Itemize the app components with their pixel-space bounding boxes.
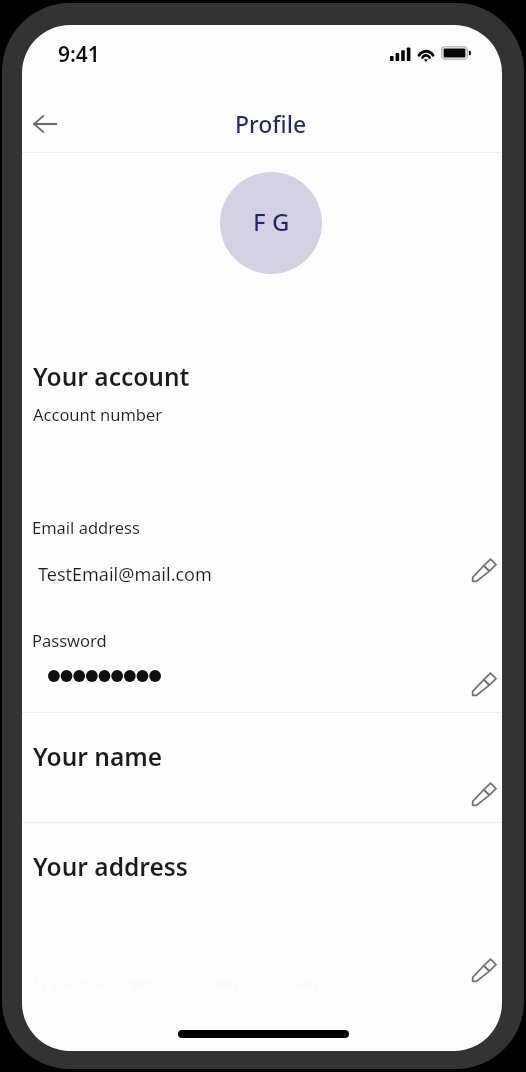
staticText: TestEmail@mail.com <box>38 562 212 587</box>
button[interactable]: TestEmail@mail.com <box>22 556 502 604</box>
button[interactable]: Edit <box>467 668 501 702</box>
staticText: 9:41 <box>58 40 100 69</box>
button[interactable]: Edit <box>467 554 501 588</box>
staticText: Profile <box>235 108 307 139</box>
staticText: Account number <box>33 403 163 425</box>
button[interactable] <box>22 663 502 711</box>
staticText: Email address <box>32 516 140 538</box>
staticText: Your address <box>33 850 188 883</box>
button[interactable] <box>22 713 502 822</box>
staticText: Password <box>32 629 107 651</box>
staticText: Your account <box>33 360 190 393</box>
button[interactable] <box>22 823 502 988</box>
button[interactable]: Edit <box>467 954 501 988</box>
button[interactable]: Back <box>23 102 67 146</box>
button[interactable]: Edit <box>467 778 501 812</box>
staticText: Your name <box>33 740 163 773</box>
button[interactable]: Profile picture <box>220 172 322 274</box>
staticText: F G <box>253 205 290 238</box>
